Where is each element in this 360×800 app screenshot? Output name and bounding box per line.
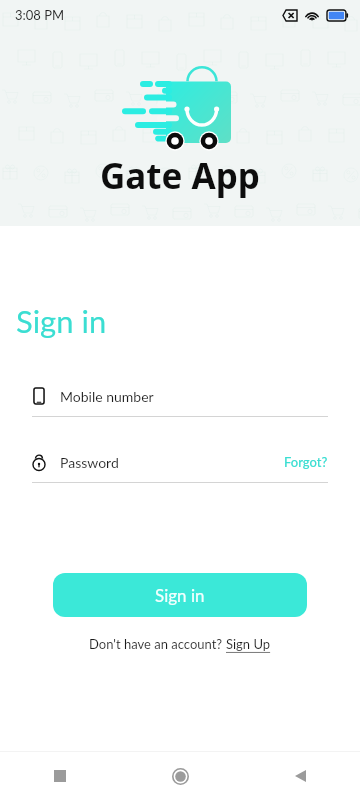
button[interactable]: Mobile number: [32, 383, 328, 417]
button[interactable]: Sign Up: [226, 636, 271, 652]
button[interactable]: Password: [32, 449, 328, 483]
button[interactable]: Recent apps: [0, 752, 120, 800]
staticText: Gate App: [100, 152, 260, 200]
staticText: Password: [60, 454, 119, 471]
staticText: Don't have an account?: [89, 636, 226, 652]
staticText: Mobile number: [60, 388, 154, 405]
staticText: Sign Up: [226, 636, 271, 652]
button[interactable]: Forgot?: [284, 454, 328, 470]
button[interactable]: Home: [120, 752, 240, 800]
staticText: Sign in: [16, 302, 107, 339]
button[interactable]: Back: [240, 752, 360, 800]
staticText: 3:08 PM: [15, 7, 65, 23]
staticText: Forgot?: [284, 454, 328, 470]
staticText: Sign in: [155, 585, 205, 605]
button[interactable]: Sign in: [53, 573, 307, 617]
